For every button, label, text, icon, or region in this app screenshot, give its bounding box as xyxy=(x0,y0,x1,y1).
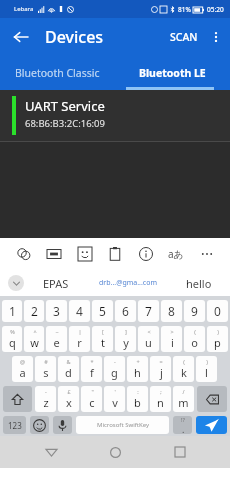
staticText: drb...@gma...com xyxy=(99,278,157,288)
button[interactable]: ( xyxy=(184,326,205,352)
staticText: > xyxy=(170,328,174,335)
staticText: x xyxy=(66,395,72,410)
button[interactable]: 2 xyxy=(24,300,44,322)
button[interactable]: [ xyxy=(92,326,113,352)
button[interactable]: Info xyxy=(135,243,157,265)
staticText: @ xyxy=(20,358,25,365)
button[interactable]: GIF xyxy=(43,243,65,265)
staticText: [ xyxy=(102,328,104,335)
staticText: 68:B6:B3:2C:16:09 xyxy=(25,117,105,130)
button[interactable]: More options xyxy=(204,25,228,49)
button[interactable]: 3 xyxy=(46,300,67,322)
staticText: j xyxy=(160,365,163,380)
staticText: g xyxy=(111,365,118,380)
button[interactable]: !? xyxy=(173,416,192,434)
button[interactable]: Microsoft SwiftKey xyxy=(76,416,169,434)
staticText: ] xyxy=(125,328,127,335)
button[interactable]: = xyxy=(150,356,171,382)
staticText: SCAN xyxy=(170,30,198,44)
button[interactable]: 9 xyxy=(184,300,205,322)
staticText: ' xyxy=(114,388,116,395)
staticText: = xyxy=(159,358,163,365)
staticText: 81% xyxy=(178,5,191,14)
staticText: z xyxy=(43,395,49,410)
button[interactable]: More xyxy=(196,243,218,265)
staticText: ) xyxy=(217,328,219,335)
button[interactable]: 4 xyxy=(69,300,90,322)
button[interactable]: ' xyxy=(104,386,125,412)
button[interactable]: aあ xyxy=(165,243,187,265)
button[interactable]: Expand suggestions xyxy=(8,275,24,291)
button[interactable]: UART Service xyxy=(0,90,230,141)
button[interactable]: Send xyxy=(196,416,227,434)
staticText: w xyxy=(30,335,39,350)
staticText: - xyxy=(45,388,47,395)
button[interactable]: Backspace xyxy=(197,386,227,412)
button[interactable]: hello xyxy=(167,276,230,291)
staticText: o xyxy=(191,335,198,350)
button[interactable]: Shift xyxy=(3,386,32,412)
button[interactable]: @ xyxy=(12,356,33,382)
staticText: p xyxy=(214,335,221,350)
button[interactable]: ] xyxy=(115,326,136,352)
button[interactable]: drb...@gma...com xyxy=(88,278,167,288)
button[interactable]: ~ xyxy=(46,326,67,352)
button[interactable]: & xyxy=(58,356,79,382)
staticText: u xyxy=(145,335,152,350)
staticText: 3 xyxy=(53,303,60,319)
button[interactable]: " xyxy=(81,386,102,412)
button[interactable]: Bluetooth Classic xyxy=(0,55,115,90)
button[interactable]: | xyxy=(69,326,90,352)
button[interactable]: Voice input xyxy=(53,416,72,434)
button[interactable]: Back xyxy=(8,24,34,50)
button[interactable]: # xyxy=(35,356,56,382)
staticText: ) xyxy=(206,358,208,365)
button[interactable]: Clipboard xyxy=(104,243,126,265)
button[interactable]: % xyxy=(2,326,22,352)
staticText: s xyxy=(43,365,49,380)
button[interactable]: EPAS xyxy=(24,276,88,291)
button[interactable]: £ xyxy=(58,386,79,412)
staticText: 1 xyxy=(9,303,16,319)
staticText: £ xyxy=(67,388,71,395)
button[interactable]: + xyxy=(127,356,148,382)
button[interactable]: ^ xyxy=(24,326,44,352)
button[interactable]: 5 xyxy=(92,300,113,322)
button[interactable]: ) xyxy=(196,356,217,382)
button[interactable]: * xyxy=(81,356,102,382)
staticText: y xyxy=(123,335,129,350)
staticText: ; xyxy=(160,388,162,395)
button[interactable]: : xyxy=(127,386,148,412)
button[interactable]: Emoji xyxy=(30,416,49,434)
button[interactable]: Recents xyxy=(166,438,194,466)
staticText: q xyxy=(9,335,16,350)
button[interactable]: 6 xyxy=(115,300,136,322)
button[interactable]: Home xyxy=(101,438,129,466)
button[interactable]: Sticker face xyxy=(74,243,96,265)
staticText: EPAS xyxy=(43,276,69,291)
button[interactable]: ; xyxy=(150,386,171,412)
staticText: < xyxy=(147,328,151,335)
staticText: h xyxy=(134,365,141,380)
staticText: i xyxy=(171,335,174,350)
staticText: ~ xyxy=(55,328,59,335)
button[interactable]: Bluetooth LE xyxy=(115,55,230,90)
button[interactable]: SCAN xyxy=(164,24,204,50)
staticText: Lebara xyxy=(14,5,34,13)
button[interactable]: < xyxy=(138,326,159,352)
button[interactable]: / xyxy=(173,386,194,412)
staticText: ( xyxy=(194,328,196,335)
button[interactable]: Stickers xyxy=(13,243,35,265)
button[interactable]: - xyxy=(35,386,56,412)
staticText: c xyxy=(89,395,95,410)
button[interactable]: ( xyxy=(173,356,194,382)
button[interactable]: 7 xyxy=(138,300,159,322)
button[interactable]: > xyxy=(161,326,182,352)
button[interactable]: 8 xyxy=(161,300,182,322)
button[interactable]: 1 xyxy=(2,300,22,322)
button[interactable]: Back xyxy=(37,438,65,466)
button[interactable]: - xyxy=(104,356,125,382)
button[interactable]: ) xyxy=(207,326,228,352)
button[interactable]: 123 xyxy=(3,416,26,434)
button[interactable]: 0 xyxy=(207,300,228,322)
